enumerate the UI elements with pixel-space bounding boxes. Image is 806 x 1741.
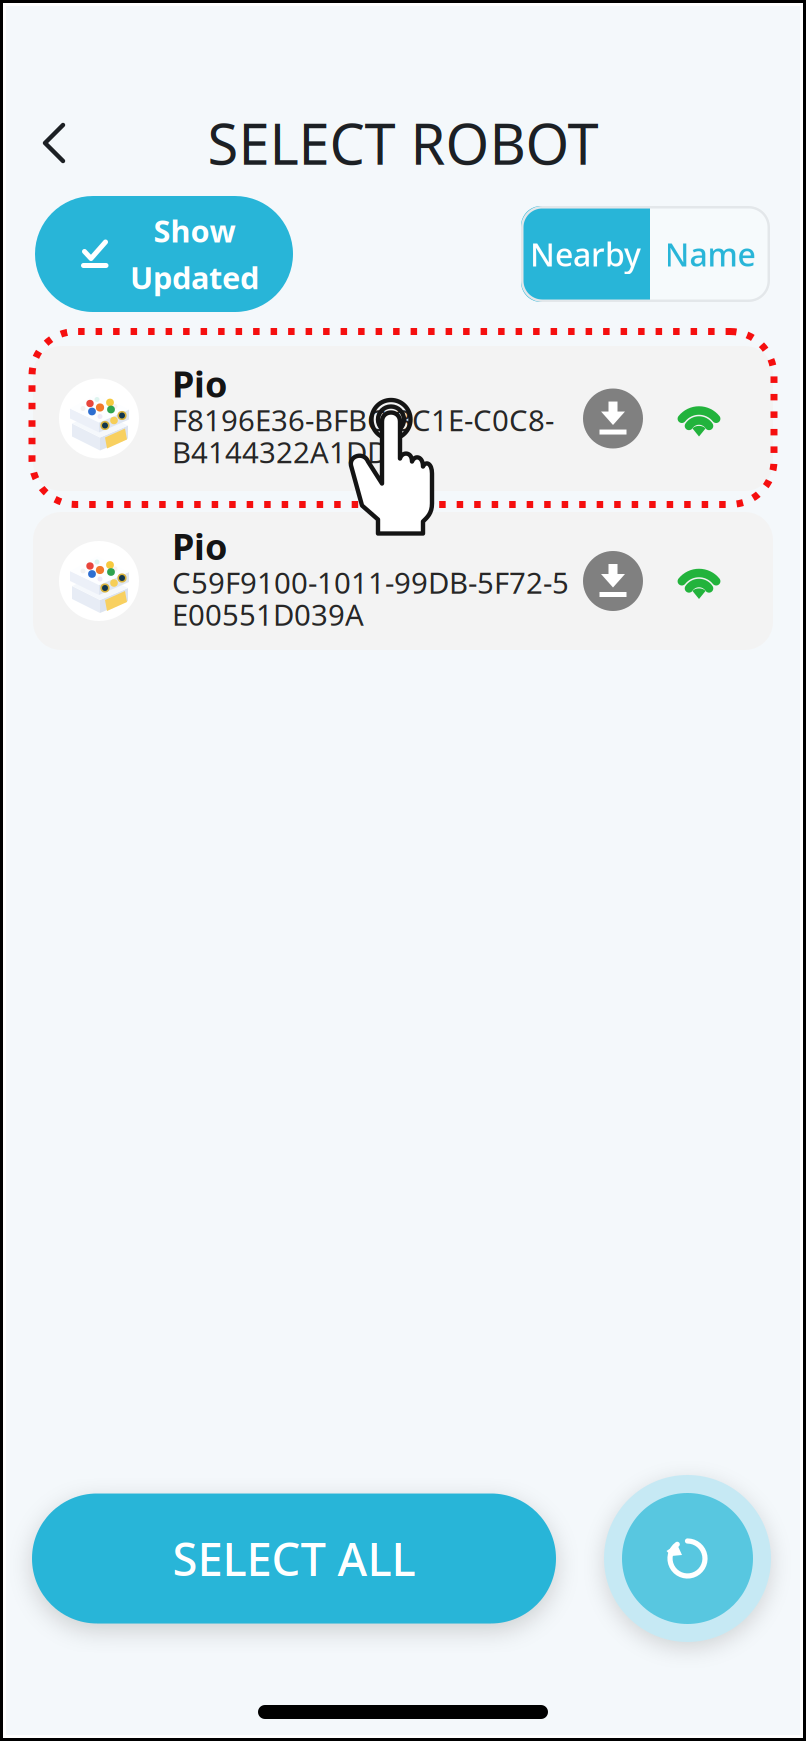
staticText: Pio	[172, 360, 228, 407]
staticText: Name	[664, 233, 755, 275]
staticText: F8196E36-BFBC-3C1E-C0C8-	[172, 400, 554, 439]
button[interactable]: Show	[35, 196, 293, 312]
staticText: E00551D039A	[172, 595, 364, 634]
button[interactable]: Nearby	[521, 206, 650, 302]
staticText: SELECT ALL	[172, 1528, 415, 1589]
staticText: C59F9100-1011-99DB-5F72-5	[172, 563, 569, 602]
button[interactable]: Pio	[33, 512, 773, 650]
staticText: SELECT ROBOT	[207, 106, 598, 180]
staticText: Nearby	[530, 233, 641, 275]
staticText: B4144322A1DD	[172, 432, 388, 471]
staticText: Updated	[130, 257, 259, 298]
button[interactable]: SELECT ALL	[32, 1493, 556, 1623]
button[interactable]: Back	[26, 115, 82, 171]
button[interactable]: Name	[650, 206, 770, 302]
button[interactable]: Refresh	[604, 1475, 771, 1642]
staticText: Pio	[172, 522, 228, 570]
button[interactable]: Pio	[33, 346, 773, 491]
staticText: Show	[153, 210, 235, 251]
